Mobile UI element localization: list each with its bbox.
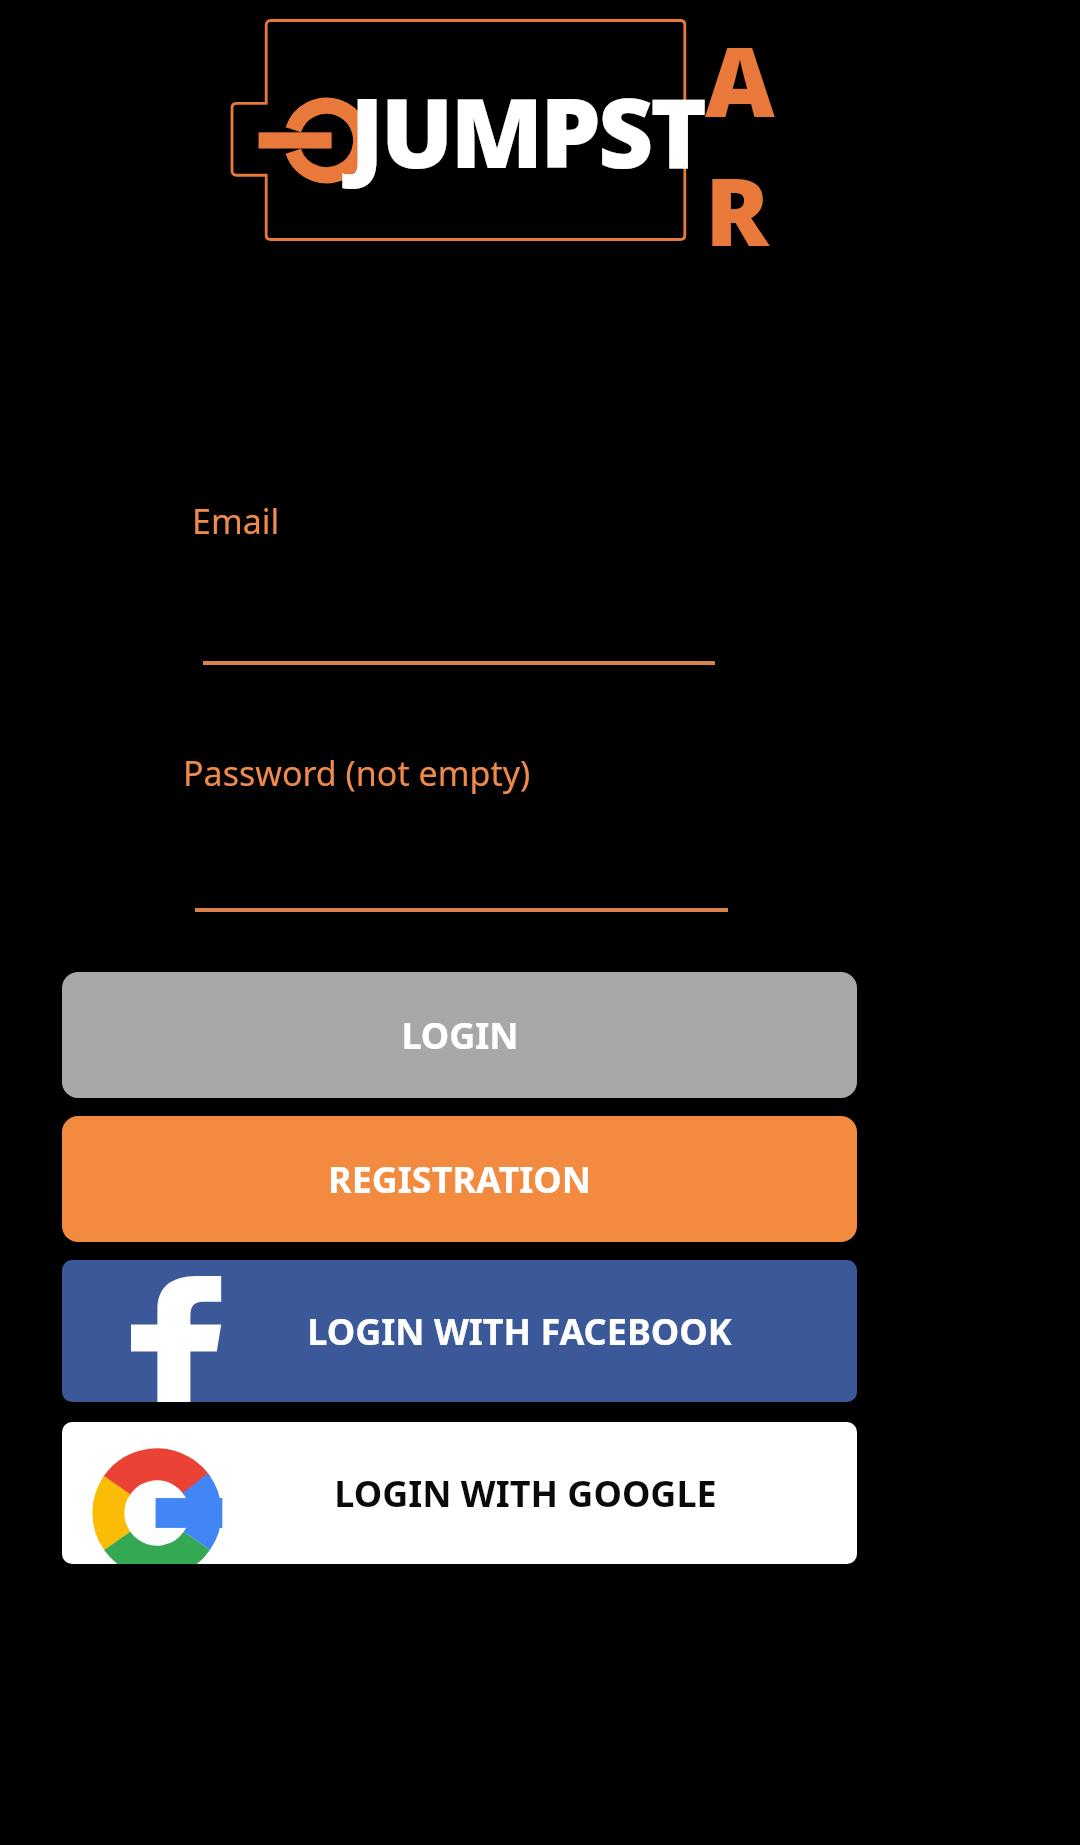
button[interactable]: LOGIN WITH FACEBOOK <box>62 1260 857 1402</box>
button[interactable]: REGISTRATION <box>62 1116 857 1242</box>
other: JumpStart logo <box>232 14 688 246</box>
staticText: ART <box>705 14 806 246</box>
staticText: REGISTRATION <box>328 1155 591 1204</box>
staticText: LOGIN WITH GOOGLE <box>334 1469 717 1518</box>
staticText: LOGIN WITH FACEBOOK <box>307 1307 732 1356</box>
staticText: Email <box>192 498 280 544</box>
staticText: Password (not empty) <box>183 750 531 796</box>
staticText: JUMPST <box>350 65 705 196</box>
staticText: LOGIN <box>401 1011 519 1060</box>
button[interactable]: LOGIN <box>62 972 857 1098</box>
button[interactable]: LOGIN WITH GOOGLE <box>62 1422 857 1564</box>
